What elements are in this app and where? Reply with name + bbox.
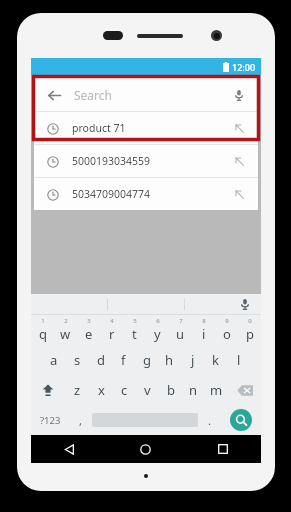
staticText: . [208, 413, 211, 428]
button[interactable]: Insert suggestion [233, 155, 246, 168]
staticText: t [132, 325, 137, 343]
button[interactable]: 4 [100, 315, 123, 345]
staticText: c [121, 381, 128, 399]
button[interactable]: 5000193034559 [34, 145, 258, 177]
staticText: 2 [64, 317, 68, 325]
button[interactable]: Insert suggestion [233, 188, 246, 201]
staticText: n [189, 381, 198, 399]
staticText: a [50, 351, 58, 369]
staticText: q [39, 325, 47, 343]
button[interactable]: 6 [146, 315, 169, 345]
staticText: o [223, 325, 231, 343]
button[interactable]: ?123 [31, 405, 69, 435]
button[interactable]: product 71 [34, 112, 258, 144]
staticText: 4 [110, 317, 114, 325]
button[interactable]: Back [34, 78, 258, 111]
button[interactable]: g [135, 345, 158, 375]
staticText: 3 [87, 317, 91, 325]
staticText: ?123 [40, 414, 61, 427]
staticText: 6 [156, 317, 160, 325]
button[interactable]: 5 [123, 315, 146, 345]
button[interactable]: z [65, 375, 89, 405]
staticText: Search [74, 87, 228, 103]
staticText: 5034709004774 [72, 187, 233, 201]
button[interactable]: h [158, 345, 181, 375]
button[interactable]: Search [221, 405, 261, 435]
staticText: , [79, 413, 82, 428]
staticText: k [212, 351, 219, 369]
button[interactable]: m [205, 375, 228, 405]
staticText: 0 [248, 317, 252, 325]
button[interactable]: x [89, 375, 113, 405]
staticText: h [165, 351, 174, 369]
button[interactable]: Voice search [228, 84, 250, 106]
staticText: m [210, 381, 223, 399]
staticText: r [109, 325, 115, 343]
staticText: p [246, 325, 254, 343]
button[interactable]: 0 [238, 315, 261, 345]
button[interactable]: Insert suggestion [233, 122, 246, 135]
button[interactable]: Home [107, 435, 184, 463]
button[interactable]: 8 [192, 315, 215, 345]
staticText: b [167, 381, 175, 399]
button[interactable]: Voice input [185, 294, 261, 314]
staticText: e [85, 325, 93, 343]
button[interactable]: k [204, 345, 227, 375]
staticText: d [97, 351, 105, 369]
button[interactable]: 5034709004774 [34, 178, 258, 210]
staticText: j [191, 351, 195, 369]
staticText: x [98, 381, 105, 399]
button[interactable]: f [112, 345, 135, 375]
button[interactable]: a [42, 345, 66, 375]
staticText: g [143, 351, 151, 369]
staticText: 9 [225, 317, 229, 325]
button[interactable]: Recents [184, 435, 261, 463]
staticText: u [176, 325, 185, 343]
staticText: l [237, 351, 241, 369]
staticText: 5 [133, 317, 137, 325]
button[interactable]: j [181, 345, 204, 375]
button[interactable]: 1 [31, 315, 54, 345]
staticText: product 71 [72, 121, 233, 135]
staticText: f [121, 351, 126, 369]
staticText: w [60, 325, 71, 343]
button[interactable]: c [113, 375, 136, 405]
staticText: 12:00 [232, 61, 256, 73]
staticText: y [154, 325, 161, 343]
staticText: 1 [41, 317, 45, 325]
staticText: s [74, 351, 81, 369]
staticText: i [202, 325, 206, 343]
button[interactable]: d [89, 345, 112, 375]
button[interactable]: v [136, 375, 159, 405]
staticText: z [74, 381, 81, 399]
button[interactable]: , [69, 405, 92, 435]
staticText: 7 [179, 317, 183, 325]
button[interactable]: 2 [54, 315, 77, 345]
button[interactable]: Back [43, 84, 65, 106]
staticText: 8 [202, 317, 206, 325]
button[interactable]: 9 [215, 315, 238, 345]
button[interactable]: 7 [169, 315, 192, 345]
staticText: 5000193034559 [72, 154, 233, 168]
button[interactable]: s [66, 345, 89, 375]
button[interactable]: Backspace [228, 375, 261, 405]
button[interactable]: n [182, 375, 205, 405]
button[interactable]: b [159, 375, 182, 405]
staticText: v [144, 381, 151, 399]
button[interactable]: . [198, 405, 221, 435]
button[interactable]: 3 [77, 315, 100, 345]
button[interactable]: Shift [31, 375, 65, 405]
button[interactable]: Back [31, 435, 107, 463]
button[interactable]: l [227, 345, 250, 375]
